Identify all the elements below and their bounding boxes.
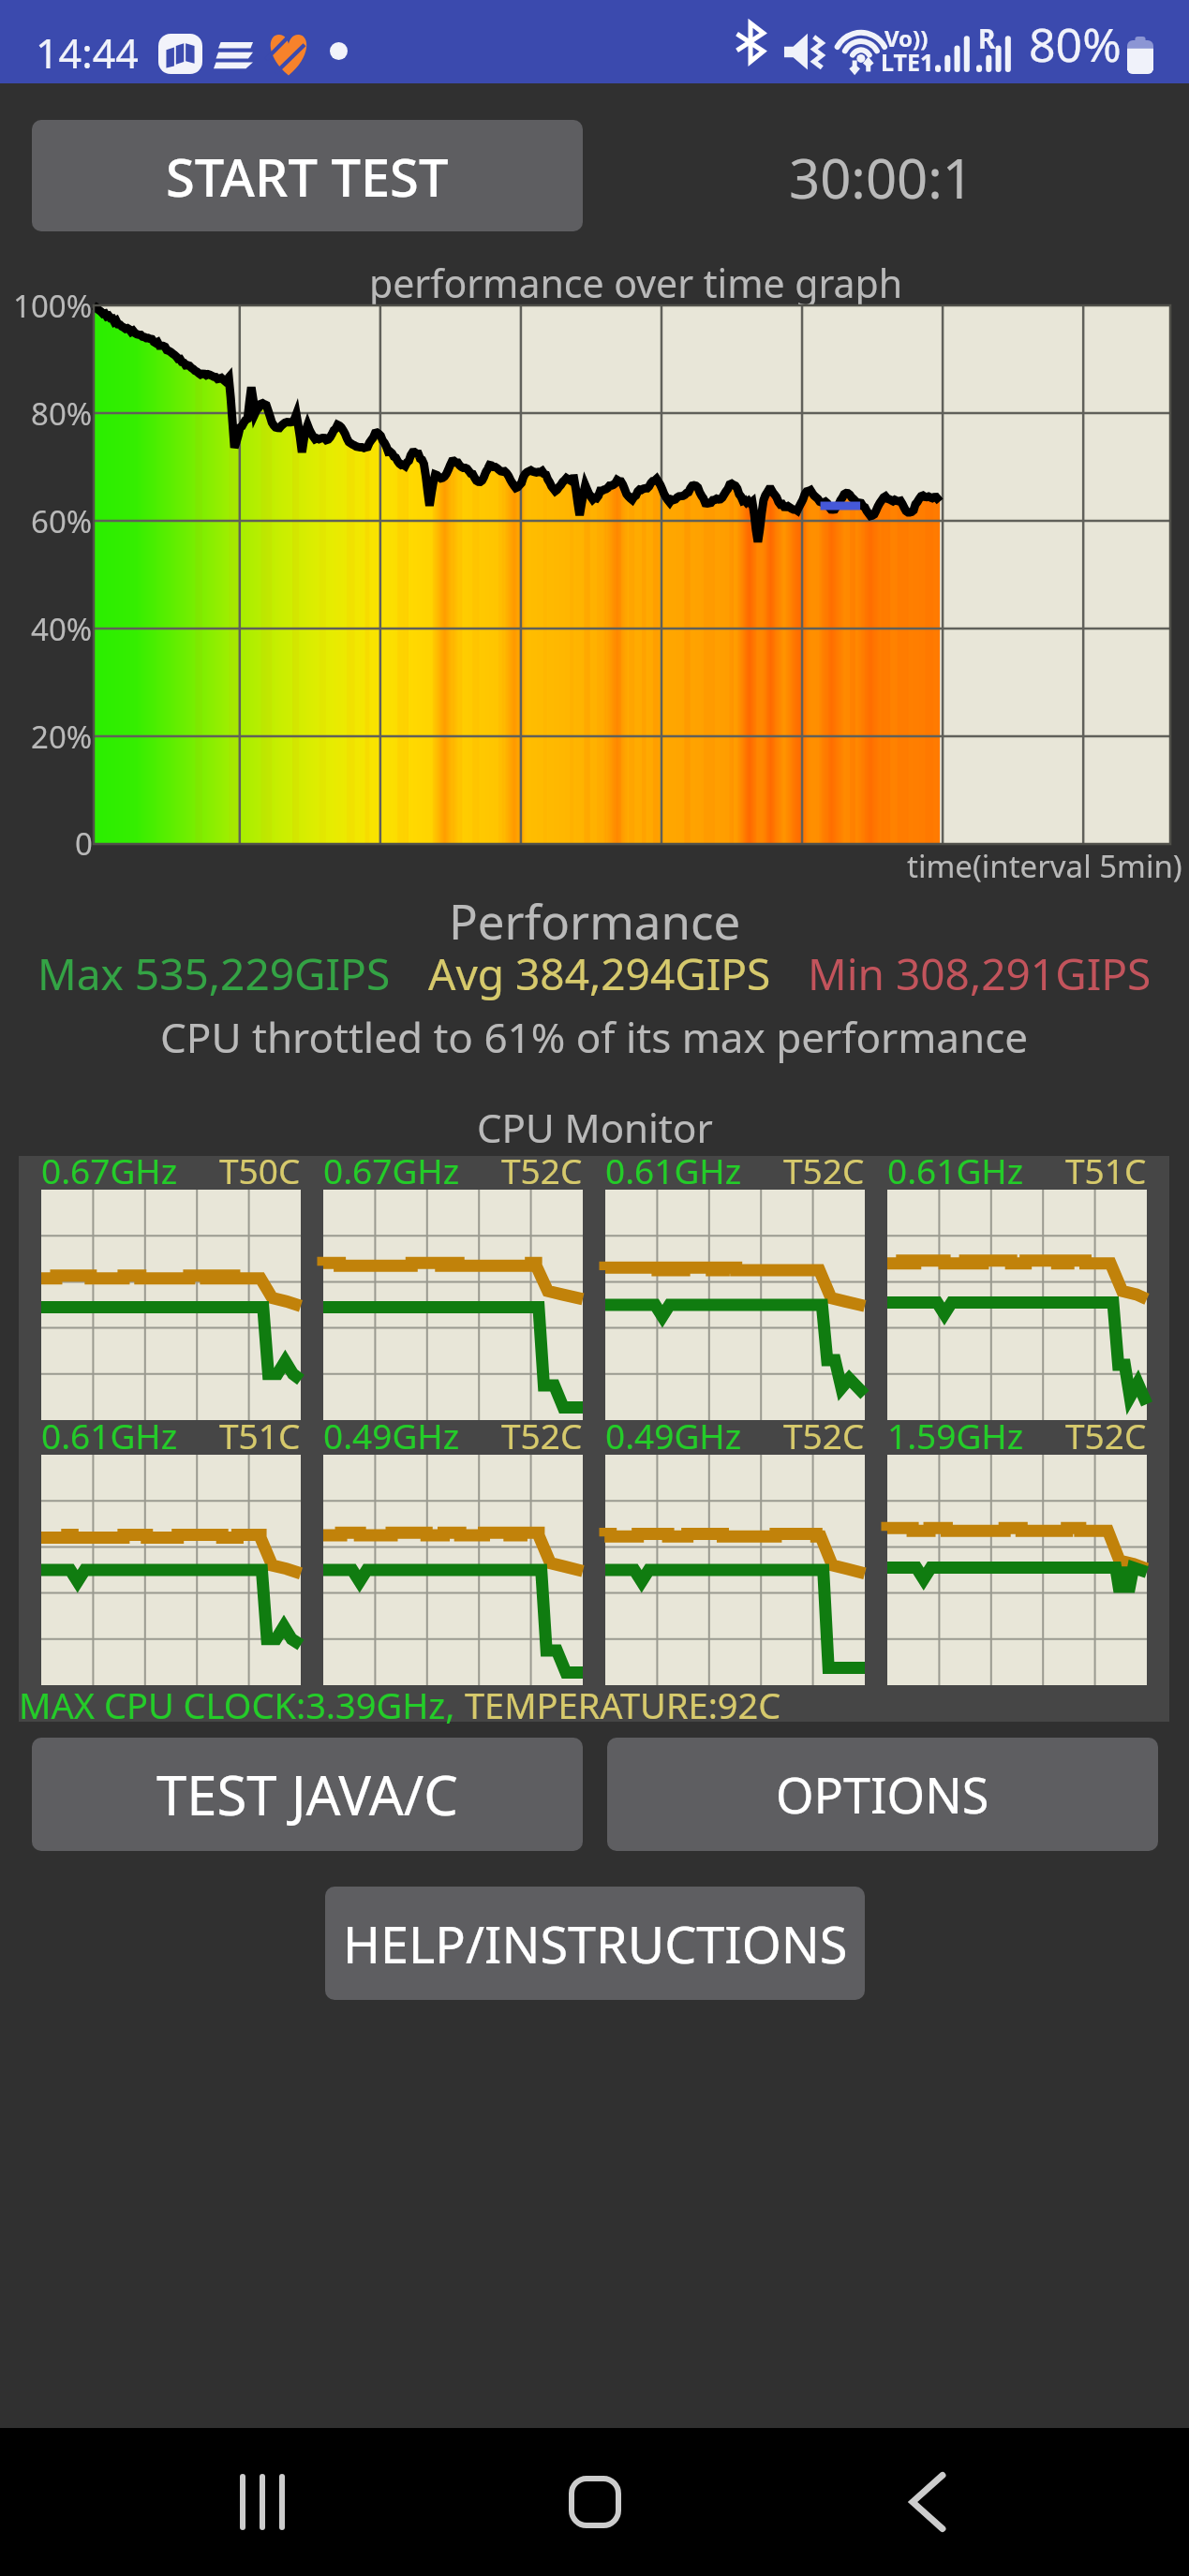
staticText: Min 308,291GIPS — [808, 944, 1152, 1003]
staticText: 0.61GHz — [887, 1147, 1024, 1193]
staticText: MAX CPU CLOCK:3.39GHz, — [19, 1680, 455, 1729]
staticText: 20% — [31, 716, 93, 758]
staticText: OPTIONS — [776, 1761, 989, 1828]
staticText: 0.61GHz — [41, 1412, 178, 1458]
staticText: Max 535,229GIPS — [37, 944, 391, 1003]
staticText: T52C — [501, 1147, 583, 1193]
button[interactable]: TEST JAVA/C — [32, 1738, 583, 1851]
staticText: 0.67GHz — [41, 1147, 178, 1193]
staticText: T52C — [1065, 1412, 1147, 1458]
button[interactable]: START TEST — [32, 120, 583, 231]
staticText: 0.49GHz — [605, 1412, 742, 1458]
button[interactable]: Back — [806, 2428, 1049, 2576]
staticText: HELP/INSTRUCTIONS — [343, 1909, 848, 1978]
button[interactable]: HELP/INSTRUCTIONS — [325, 1887, 865, 2000]
staticText: 100% — [13, 285, 93, 327]
staticText: CPU throttled to 61% of its max performa… — [160, 1009, 1029, 1065]
staticText: LTE1 — [881, 46, 934, 78]
staticText: TEST JAVA/C — [156, 1757, 459, 1831]
staticText: T50C — [219, 1147, 301, 1193]
button[interactable]: Recent apps — [141, 2428, 384, 2576]
staticText: 80% — [1029, 12, 1122, 76]
staticText: Vo)) — [884, 22, 929, 53]
staticText: T52C — [783, 1412, 865, 1458]
staticText: 60% — [31, 500, 93, 542]
staticText: 0 — [75, 822, 93, 865]
staticText: 1.59GHz — [887, 1412, 1024, 1458]
staticText: 40% — [31, 608, 93, 650]
staticText: TEMPERATURE:92C — [455, 1680, 781, 1729]
staticText: T51C — [1065, 1147, 1147, 1193]
staticText: 30:00:1 — [789, 141, 973, 215]
staticText: Performance — [449, 888, 741, 953]
button[interactable]: Home — [473, 2428, 717, 2576]
staticText: 14:44 — [36, 25, 139, 81]
staticText: Avg 384,294GIPS — [428, 944, 771, 1003]
staticText: 0.67GHz — [323, 1147, 460, 1193]
staticText: performance over time graph — [369, 257, 903, 309]
staticText: T52C — [501, 1412, 583, 1458]
staticText: T51C — [219, 1412, 301, 1458]
staticText: R — [978, 21, 996, 56]
staticText: CPU Monitor — [477, 1101, 713, 1154]
staticText: START TEST — [166, 141, 449, 212]
button[interactable]: OPTIONS — [607, 1738, 1158, 1851]
staticText: time(interval 5min) — [907, 845, 1182, 887]
staticText: 0.61GHz — [605, 1147, 742, 1193]
staticText: 80% — [31, 392, 93, 435]
staticText: 0.49GHz — [323, 1412, 460, 1458]
staticText: T52C — [783, 1147, 865, 1193]
